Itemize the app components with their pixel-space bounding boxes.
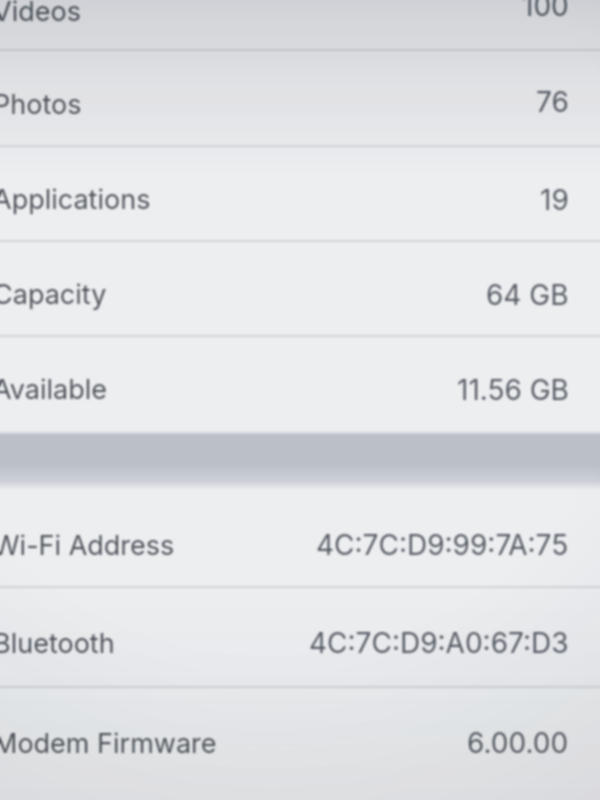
- staticText: Wi-Fi Address: [0, 529, 175, 562]
- staticText: Photos: [0, 88, 82, 121]
- staticText: 100: [522, 0, 569, 23]
- button[interactable]: Videos: [0, 0, 600, 51]
- button[interactable]: Available: [0, 337, 600, 432]
- staticText: Bluetooth: [0, 627, 115, 660]
- button[interactable]: Photos: [0, 51, 600, 147]
- button[interactable]: Applications: [0, 147, 600, 242]
- staticText: 76: [536, 85, 569, 119]
- button[interactable]: Wi-Fi Address: [0, 492, 600, 588]
- staticText: Capacity: [0, 278, 107, 311]
- staticText: 4C:7C:D9:99:7A:75: [316, 528, 569, 562]
- button[interactable]: Bluetooth: [0, 588, 600, 688]
- staticText: 19: [540, 183, 569, 217]
- staticText: 11.56 GB: [457, 373, 569, 407]
- staticText: Applications: [0, 183, 151, 216]
- staticText: Modem Firmware: [0, 727, 217, 760]
- staticText: 4C:7C:D9:A0:67:D3: [309, 626, 569, 660]
- button[interactable]: Capacity: [0, 242, 600, 337]
- staticText: Available: [0, 373, 108, 406]
- staticText: 64 GB: [486, 278, 569, 312]
- staticText: 6.00.00: [467, 726, 569, 760]
- staticText: Videos: [0, 0, 81, 28]
- button[interactable]: Modem Firmware: [0, 688, 600, 788]
